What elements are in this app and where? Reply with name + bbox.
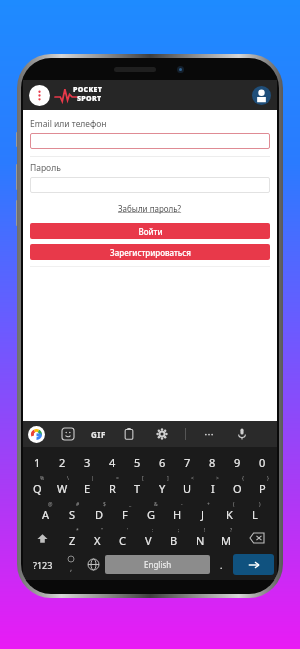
staticText: GIF xyxy=(91,429,106,440)
button[interactable]: Shift xyxy=(25,525,60,551)
button[interactable]: Enter xyxy=(233,554,274,575)
button[interactable]: 1 xyxy=(25,447,50,473)
staticText: M xyxy=(221,533,231,548)
staticText: Пароль xyxy=(30,162,61,174)
button[interactable]: Google xyxy=(28,426,45,443)
button[interactable]: ' xyxy=(110,525,135,551)
button[interactable]: " xyxy=(85,525,110,551)
staticText: $ xyxy=(103,501,106,508)
button[interactable]: ) xyxy=(242,499,268,525)
staticText: 5 xyxy=(134,455,141,470)
staticText: J xyxy=(201,507,205,522)
staticText: F xyxy=(122,507,128,522)
button[interactable]: Profile xyxy=(252,86,271,105)
staticText: 8 xyxy=(209,455,216,470)
button[interactable]: English xyxy=(105,555,210,574)
staticText: 1 xyxy=(34,455,41,470)
staticText: } xyxy=(267,475,269,482)
button[interactable]: 8 xyxy=(200,447,225,473)
button[interactable]: 5 xyxy=(125,447,150,473)
button[interactable]: 4 xyxy=(100,447,125,473)
button[interactable]: Period xyxy=(210,551,233,578)
staticText: S xyxy=(69,507,76,522)
button[interactable]: > xyxy=(200,473,225,499)
staticText: 2 xyxy=(59,455,66,470)
button[interactable]: ] xyxy=(150,473,175,499)
button[interactable]: 7 xyxy=(175,447,200,473)
button[interactable]: ?123 xyxy=(26,551,59,578)
staticText: { xyxy=(242,475,244,482)
staticText: I xyxy=(211,481,215,496)
staticText: V xyxy=(145,533,152,548)
staticText: _ xyxy=(129,501,132,508)
button[interactable]: | xyxy=(75,473,100,499)
button[interactable]: Clipboard xyxy=(119,424,139,444)
button[interactable]: { xyxy=(225,473,250,499)
staticText: W xyxy=(57,481,68,496)
button[interactable]: Menu xyxy=(29,85,50,106)
staticText: Зарегистрироваться xyxy=(110,247,191,258)
button[interactable]: Забыли пароль? xyxy=(118,203,182,214)
button[interactable]: : xyxy=(135,525,161,551)
staticText: H xyxy=(173,507,182,522)
staticText: C xyxy=(119,533,126,548)
button[interactable]: ! xyxy=(187,525,213,551)
staticText: @ xyxy=(48,501,53,508)
button[interactable]: ? xyxy=(213,525,239,551)
staticText: ] xyxy=(167,475,169,482)
staticText: D xyxy=(95,507,104,522)
staticText: A xyxy=(42,507,50,522)
button[interactable] xyxy=(30,133,270,149)
button[interactable]: Backspace xyxy=(239,525,275,551)
staticText: Войти xyxy=(138,226,163,237)
staticText: 7 xyxy=(184,455,191,470)
staticText: % xyxy=(40,475,45,482)
button[interactable] xyxy=(30,177,270,193)
button[interactable]: Settings xyxy=(152,424,172,444)
button[interactable]: More options xyxy=(199,424,219,444)
button[interactable]: & xyxy=(138,499,164,525)
staticText: U xyxy=(183,481,192,496)
staticText: ) xyxy=(259,501,261,508)
staticText: Email или телефон xyxy=(30,118,107,130)
button[interactable]: @ xyxy=(32,499,59,525)
button[interactable]: Switch language xyxy=(82,551,105,578)
button[interactable]: # xyxy=(59,499,86,525)
staticText: X xyxy=(94,533,101,548)
button[interactable]: ; xyxy=(161,525,187,551)
staticText: [ xyxy=(142,475,144,482)
button[interactable]: + xyxy=(190,499,216,525)
button[interactable]: 3 xyxy=(75,447,100,473)
button[interactable]: * xyxy=(60,525,85,551)
staticText: ; xyxy=(178,527,180,534)
button[interactable]: ( xyxy=(216,499,242,525)
staticText: 6 xyxy=(159,455,166,470)
button[interactable]: 9 xyxy=(225,447,250,473)
button[interactable]: = xyxy=(100,473,125,499)
staticText: 9 xyxy=(234,455,241,470)
button[interactable]: < xyxy=(175,473,200,499)
staticText: P xyxy=(259,481,266,496)
staticText: < xyxy=(191,475,194,482)
button[interactable]: Voice input xyxy=(232,424,252,444)
staticText: = xyxy=(116,475,119,482)
button[interactable]: $ xyxy=(86,499,112,525)
button[interactable]: 6 xyxy=(150,447,175,473)
staticText: R xyxy=(109,481,116,496)
button[interactable]: Войти xyxy=(30,223,270,239)
button[interactable]: 0 xyxy=(250,447,275,473)
staticText: 0 xyxy=(259,455,266,470)
button[interactable]: [ xyxy=(125,473,150,499)
button[interactable]: _ xyxy=(112,499,138,525)
button[interactable]: } xyxy=(250,473,275,499)
button[interactable]: \ xyxy=(50,473,75,499)
button[interactable]: GIF xyxy=(91,424,106,444)
staticText: N xyxy=(196,533,205,548)
button[interactable]: Emoji xyxy=(59,551,82,578)
button[interactable]: % xyxy=(25,473,50,499)
button[interactable]: 2 xyxy=(50,447,75,473)
staticText: 3 xyxy=(84,455,91,470)
button[interactable]: Зарегистрироваться xyxy=(30,244,270,260)
button[interactable]: Stickers xyxy=(58,424,78,444)
button[interactable]: - xyxy=(164,499,190,525)
